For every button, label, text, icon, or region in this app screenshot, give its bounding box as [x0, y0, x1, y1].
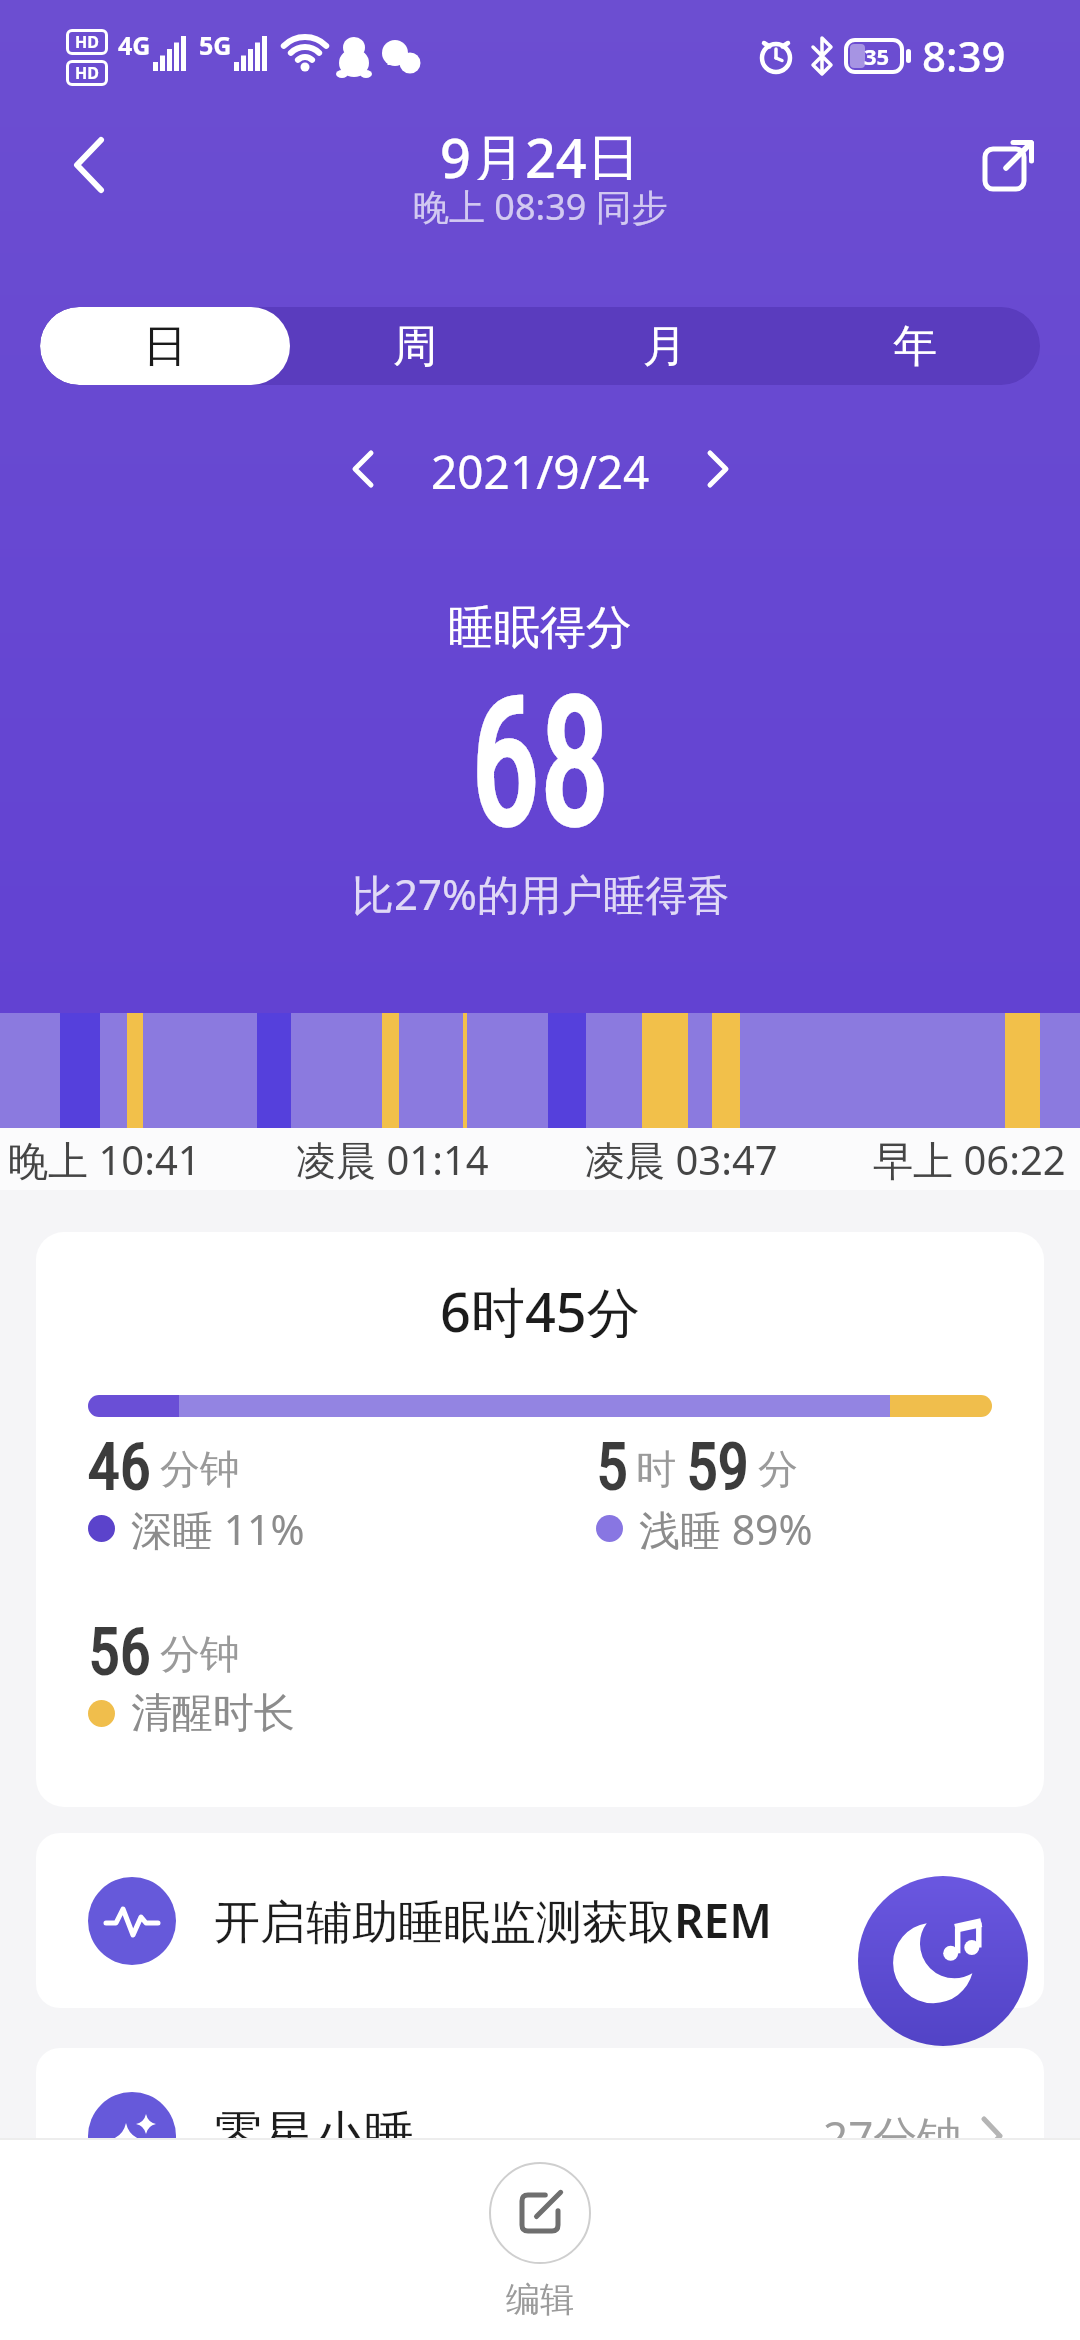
- staticText: 清醒时长: [131, 1688, 295, 1740]
- button[interactable]: 编辑: [489, 2162, 591, 2321]
- staticText: 周: [393, 319, 437, 374]
- button[interactable]: 日: [40, 307, 290, 385]
- staticText: 59: [686, 1430, 750, 1500]
- staticText: 浅睡 89%: [639, 1501, 813, 1557]
- staticText: 睡眠得分: [448, 599, 632, 657]
- staticText: 月: [643, 319, 687, 374]
- staticText: 8:39: [922, 27, 1006, 84]
- staticText: 时: [636, 1444, 676, 1494]
- staticText: 分钟: [160, 1629, 240, 1679]
- button[interactable]: [984, 140, 1034, 190]
- button[interactable]: [58, 135, 118, 195]
- staticText: 分钟: [160, 1444, 240, 1494]
- staticText: 凌晨 03:47: [585, 1132, 778, 1187]
- staticText: 56: [88, 1615, 152, 1685]
- staticText: 5: [596, 1430, 628, 1500]
- staticText: 晚上 10:41: [8, 1132, 201, 1187]
- button[interactable]: [349, 449, 375, 489]
- staticText: 晚上 08:39 同步: [413, 182, 668, 226]
- staticText: 35: [864, 41, 890, 71]
- staticText: 编辑: [506, 2278, 574, 2321]
- staticText: 深睡 11%: [131, 1501, 305, 1557]
- button[interactable]: 开启辅助睡眠监测获取REM: [36, 1833, 1044, 2008]
- staticText: 27分钟: [823, 2106, 962, 2138]
- staticText: 4G: [118, 28, 151, 62]
- staticText: 46: [88, 1430, 152, 1500]
- button[interactable]: 零星小睡: [36, 2048, 1044, 2138]
- staticText: HD: [75, 31, 99, 53]
- staticText: 年: [893, 319, 937, 374]
- staticText: 5G: [199, 28, 232, 62]
- staticText: 早上 06:22: [873, 1132, 1066, 1187]
- button[interactable]: 6时45分: [36, 1232, 1044, 1807]
- staticText: 分: [758, 1444, 798, 1494]
- staticText: 零星小睡: [214, 2104, 414, 2138]
- button[interactable]: [706, 449, 732, 489]
- staticText: 比27%的用户睡得香: [352, 865, 729, 920]
- staticText: 开启辅助睡眠监测获取REM: [214, 1889, 772, 1952]
- staticText: 日: [143, 319, 187, 374]
- button[interactable]: 年: [790, 307, 1040, 385]
- staticText: HD: [75, 62, 99, 84]
- button[interactable]: 周: [290, 307, 540, 385]
- staticText: 2021/9/24: [431, 440, 650, 498]
- staticText: 9月24日: [440, 120, 641, 180]
- staticText: 6时45分: [440, 1274, 641, 1338]
- button[interactable]: [858, 1876, 1028, 2046]
- staticText: 凌晨 01:14: [296, 1132, 489, 1187]
- staticText: 68: [470, 660, 610, 866]
- button[interactable]: 月: [540, 307, 790, 385]
